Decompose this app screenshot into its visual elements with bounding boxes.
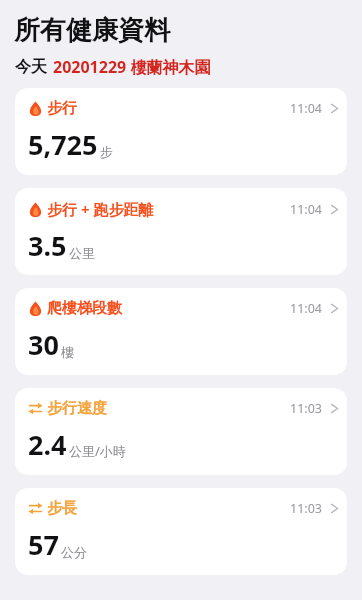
staticText: 3.5 <box>28 227 67 264</box>
staticText: 所有健康資料 <box>14 14 170 47</box>
other: Open details <box>330 301 339 316</box>
button[interactable]: Walking metric <box>15 488 347 575</box>
staticText: 11:04 <box>290 300 322 317</box>
other: Open details <box>330 202 339 217</box>
staticText: 30 <box>28 326 59 363</box>
staticText: 11:04 <box>290 201 322 218</box>
staticText: 57 <box>28 526 59 563</box>
staticText: 2.4 <box>28 426 67 463</box>
button[interactable]: Activity <box>15 188 347 275</box>
staticText: 公里 <box>69 245 95 261</box>
other: Activity <box>28 301 43 316</box>
other: Activity <box>28 101 43 116</box>
staticText: 5,725 <box>28 126 98 163</box>
staticText: 11:03 <box>290 400 322 417</box>
staticText: 樓 <box>61 344 74 360</box>
staticText: 步行 + 跑步距離 <box>47 199 154 219</box>
staticText: 今天 <box>15 57 47 77</box>
other: Open details <box>330 101 339 116</box>
other: Walking metric <box>28 501 43 516</box>
staticText: 爬樓梯段數 <box>47 299 122 318</box>
staticText: 步長 <box>47 499 77 518</box>
staticText: 11:03 <box>290 500 322 517</box>
staticText: 步行速度 <box>47 399 107 418</box>
other: Walking metric <box>28 401 43 416</box>
other: Open details <box>330 501 339 516</box>
other: Open details <box>330 401 339 416</box>
staticText: 11:04 <box>290 100 322 117</box>
button[interactable]: Activity <box>15 88 347 175</box>
staticText: 步行 <box>47 99 77 118</box>
staticText: 公里/小時 <box>69 442 126 460</box>
staticText: 步 <box>100 144 113 160</box>
staticText: 20201229 樓蘭神木園 <box>53 56 211 78</box>
staticText: 公分 <box>61 544 87 560</box>
button[interactable]: Walking metric <box>15 388 347 475</box>
other: Activity <box>28 202 43 217</box>
button[interactable]: Activity <box>15 288 347 375</box>
